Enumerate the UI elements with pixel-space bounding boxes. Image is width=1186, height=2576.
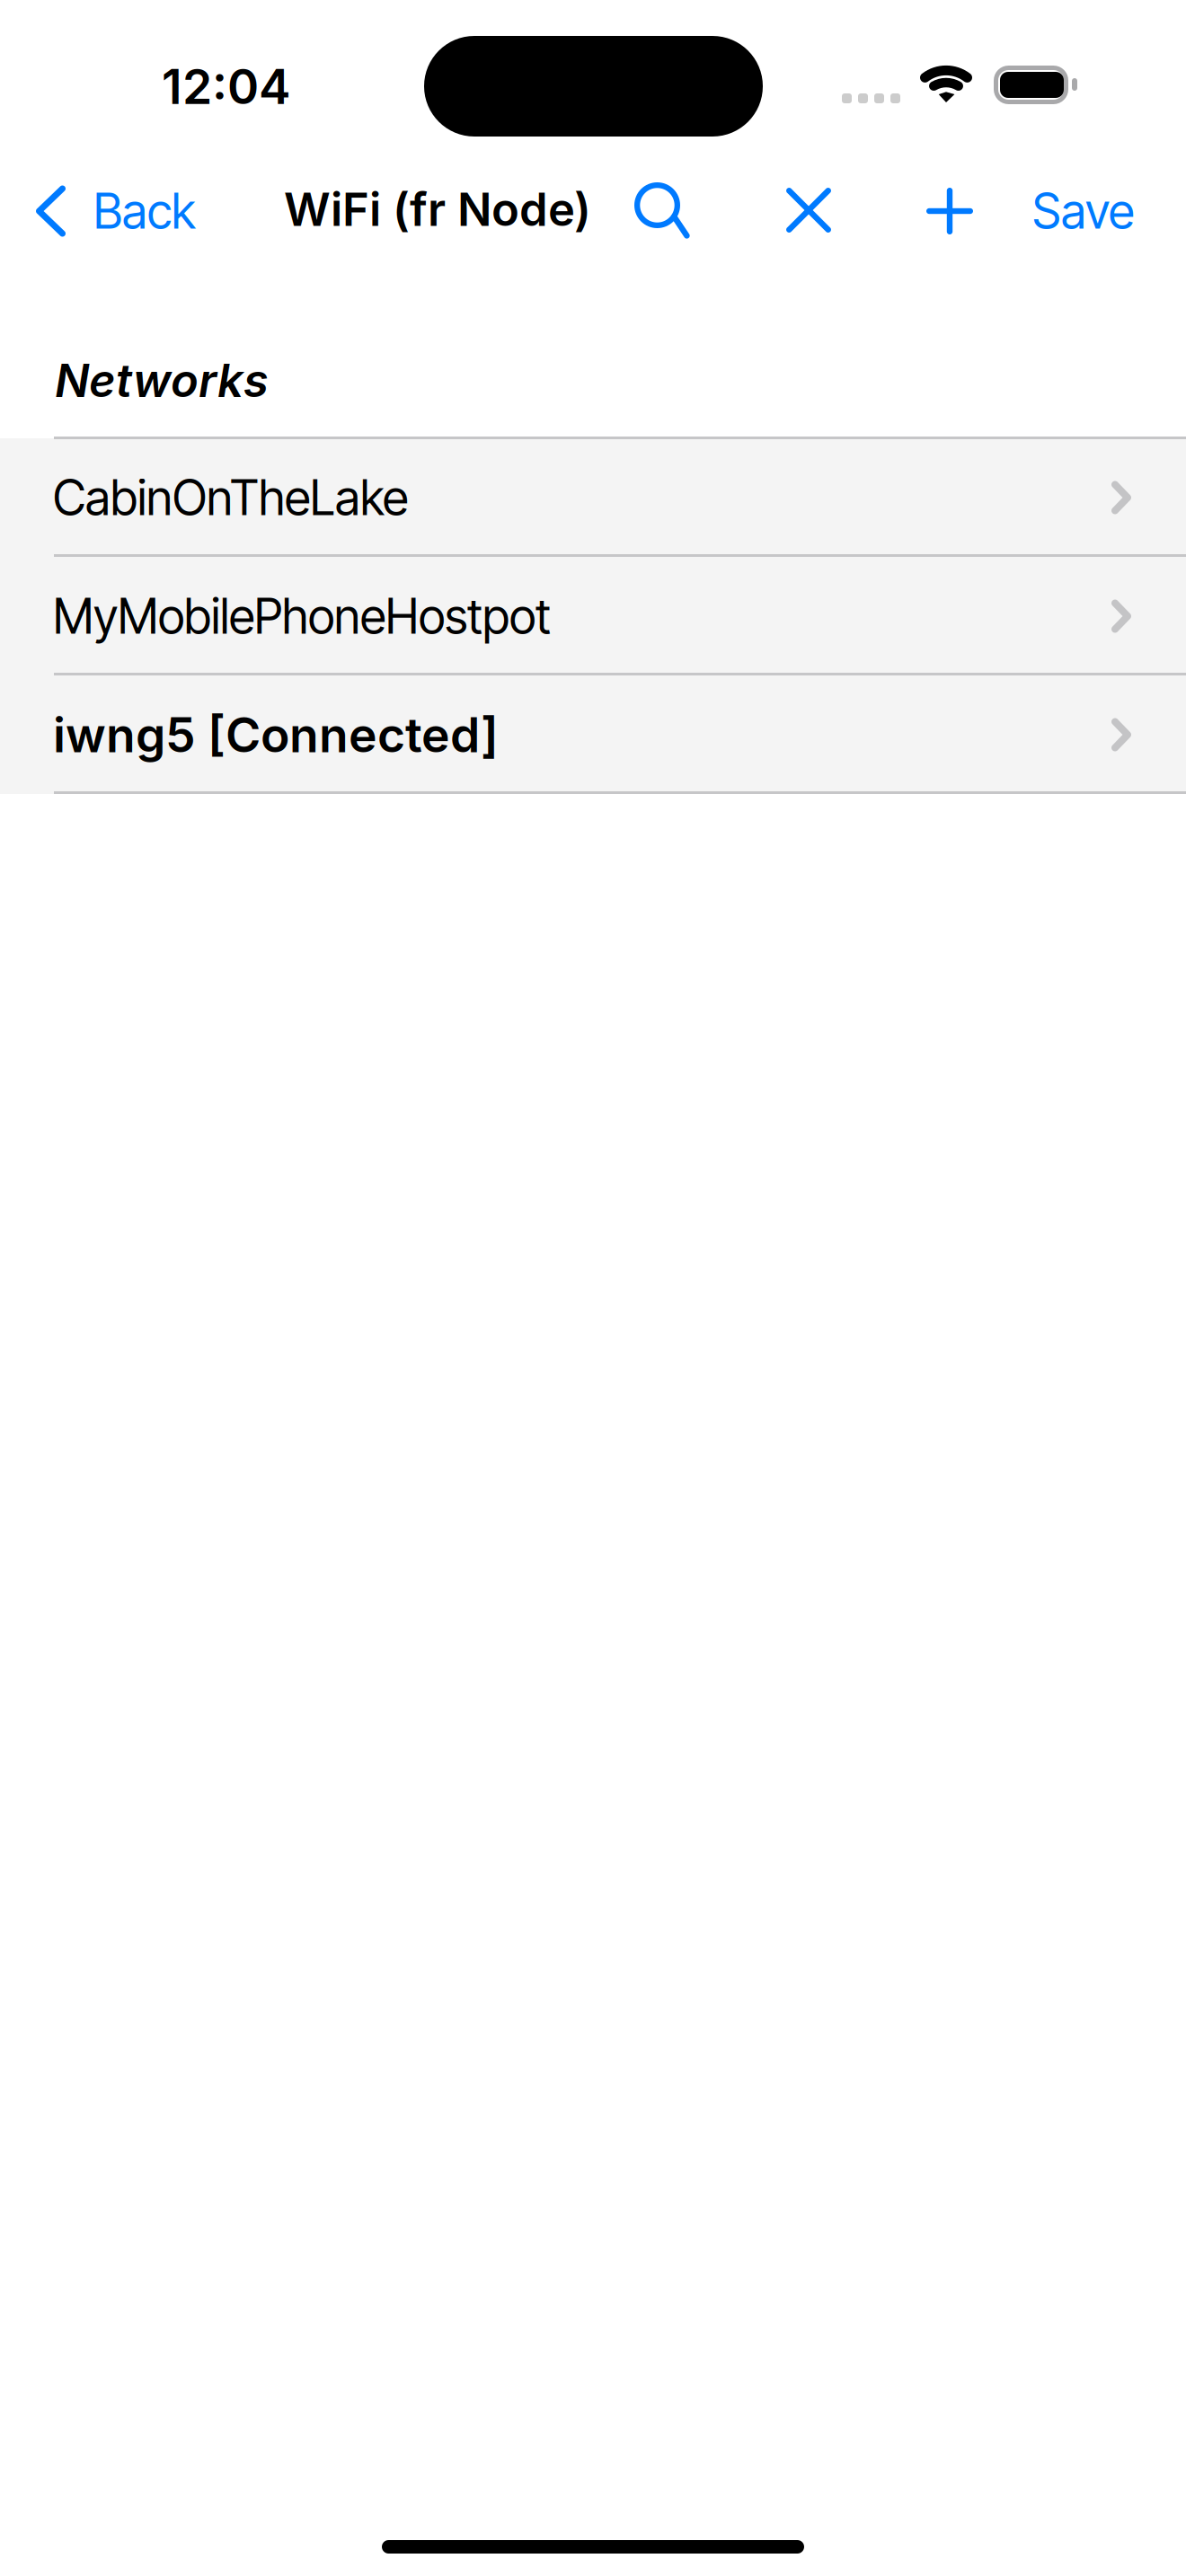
button[interactable]: CabinOnTheLake [0, 438, 1186, 557]
staticText: MyMobilePhoneHostpot [53, 587, 551, 645]
button[interactable]: WiFi (fr Node) [275, 166, 600, 252]
button[interactable]: Close [766, 168, 851, 252]
button[interactable]: Search [620, 168, 704, 252]
staticText: CabinOnTheLake [53, 469, 408, 527]
button[interactable]: MyMobilePhoneHostpot [0, 557, 1186, 675]
staticText: Back [93, 182, 196, 240]
staticText: 12:04 [162, 57, 291, 115]
button[interactable]: iwng5 [Connected] [0, 675, 1186, 794]
staticText: WiFi (fr Node) [284, 182, 591, 237]
button[interactable]: Save [1018, 168, 1148, 254]
staticText: Networks [55, 353, 269, 408]
staticText: Save [1032, 182, 1134, 240]
button[interactable]: Back [23, 168, 208, 254]
staticText: iwng5 [Connected] [53, 706, 499, 764]
button[interactable]: Add network [907, 168, 993, 254]
